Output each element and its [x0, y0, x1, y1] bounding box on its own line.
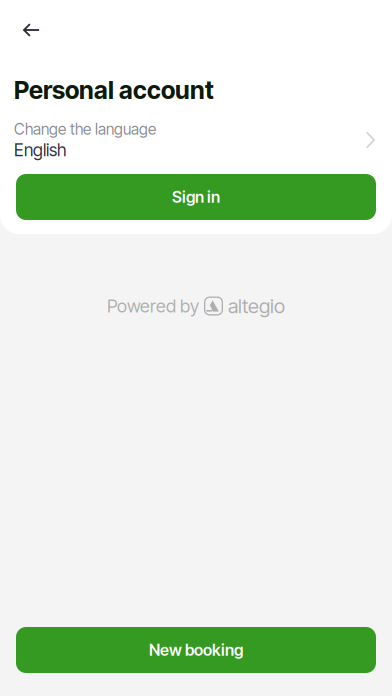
button[interactable]: Sign in: [16, 174, 376, 220]
staticText: Personal account: [14, 75, 214, 105]
staticText: Change the language: [14, 120, 156, 138]
button[interactable]: New booking: [16, 627, 376, 673]
button[interactable]: Back: [0, 8, 69, 52]
staticText: English: [14, 139, 66, 160]
button[interactable]: Change the language: [0, 117, 392, 163]
staticText: New booking: [149, 640, 243, 660]
staticText: Sign in: [172, 187, 220, 207]
staticText: altegio: [228, 294, 285, 318]
staticText: Powered by: [107, 295, 199, 317]
